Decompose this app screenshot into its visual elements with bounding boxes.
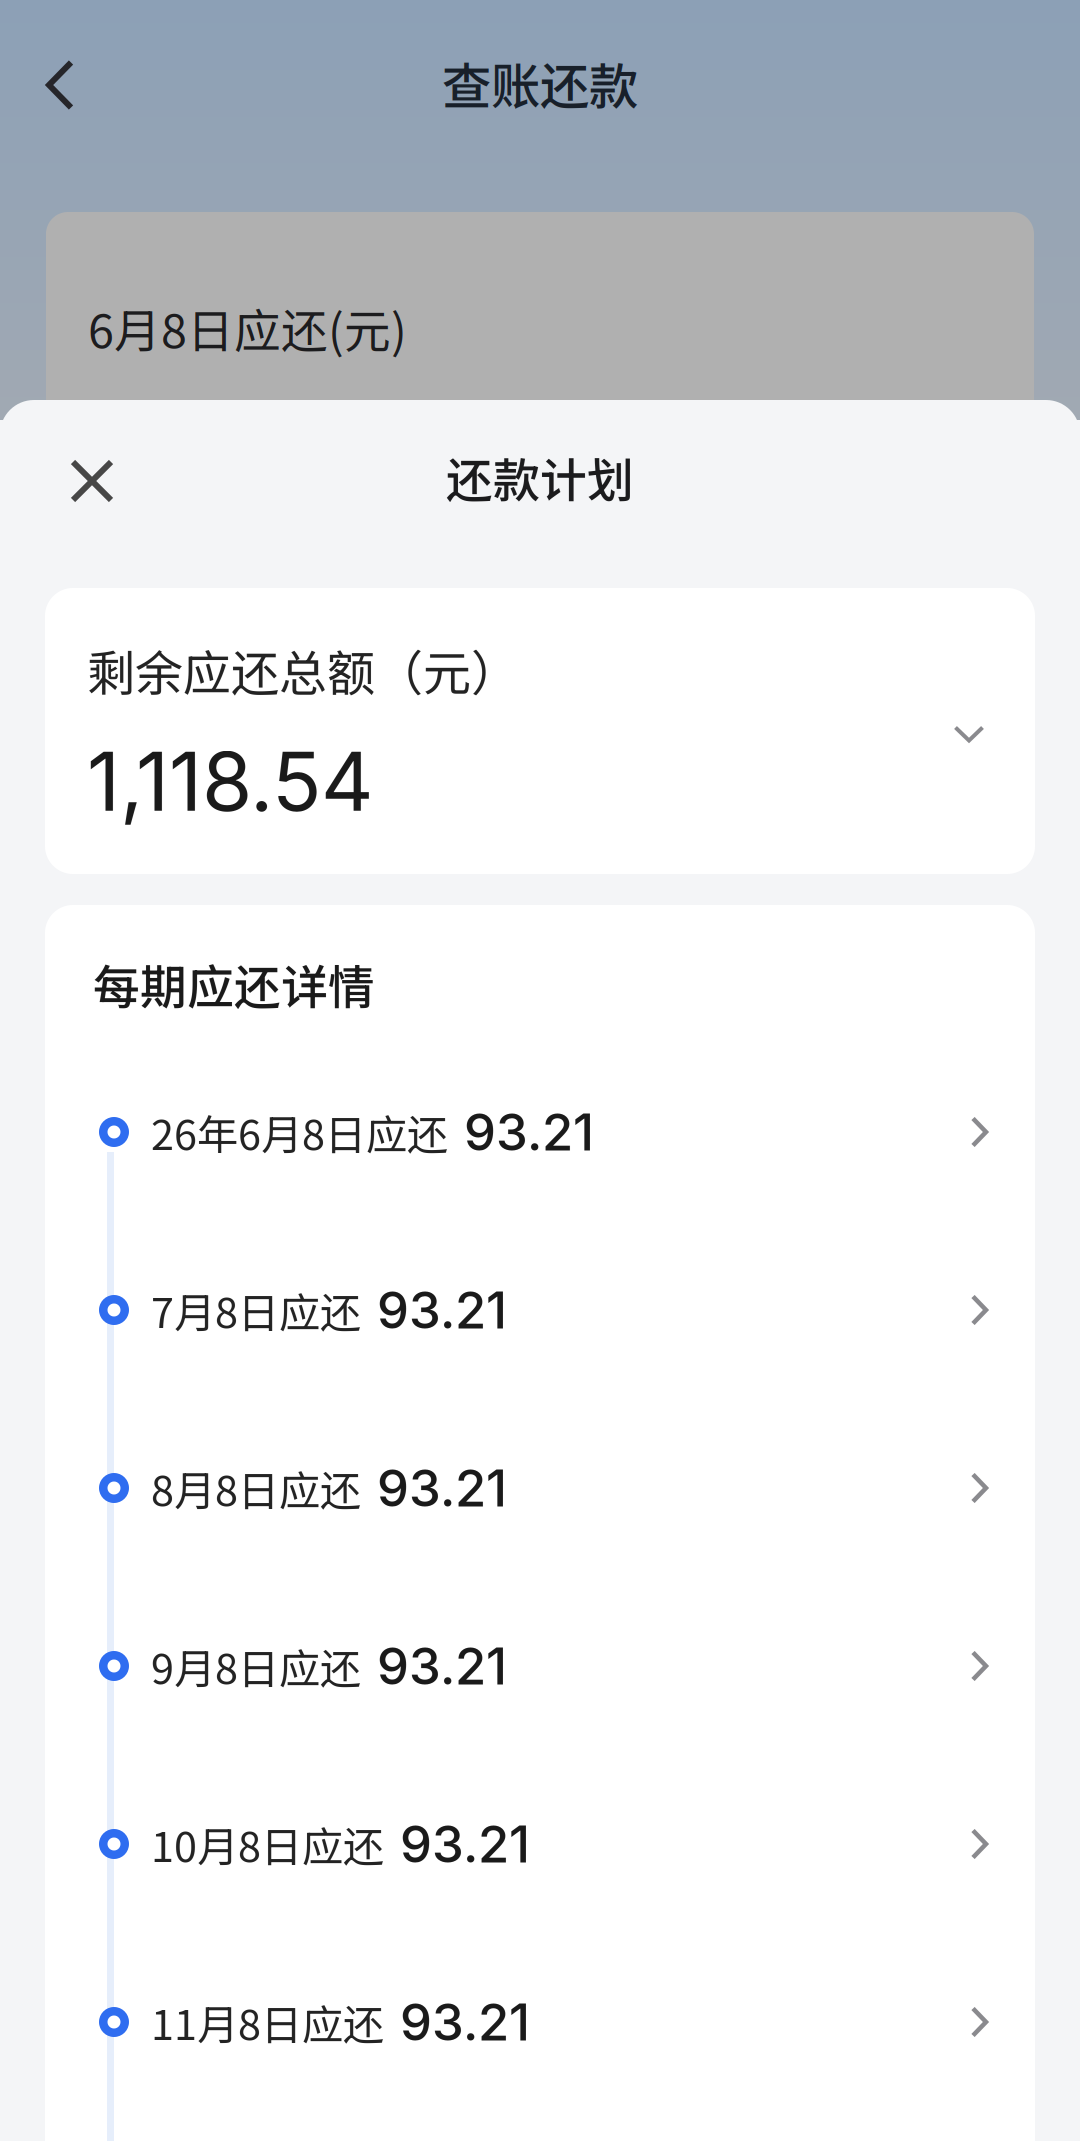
button[interactable]: 11月8日应还 — [0, 1967, 1080, 2077]
staticText: 93.21 — [377, 1457, 507, 1519]
staticText: 11月8日应还 — [151, 1992, 384, 2052]
staticText: 93.21 — [377, 1635, 507, 1697]
staticText: 93.21 — [400, 1991, 530, 2053]
button[interactable]: 26年6月8日应还 — [0, 1077, 1080, 1187]
staticText: 7月8日应还 — [151, 1280, 361, 1340]
staticText: 还款计划 — [446, 443, 634, 511]
staticText: 26年6月8日应还 — [151, 1102, 448, 1162]
staticText: 6月8日应还(元) — [88, 294, 407, 362]
staticText: 剩余应还总额（元） — [87, 635, 519, 704]
button[interactable]: 8月8日应还 — [0, 1433, 1080, 1543]
staticText: 10月8日应还 — [151, 1814, 384, 1874]
button[interactable]: 7月8日应还 — [0, 1255, 1080, 1365]
staticText: 93.21 — [464, 1101, 594, 1163]
staticText: 93.21 — [400, 1813, 530, 1875]
staticText: 1,118.54 — [87, 732, 374, 830]
staticText: 查账还款 — [442, 47, 638, 119]
staticText: 9月8日应还 — [151, 1636, 361, 1696]
button[interactable]: 9月8日应还 — [0, 1611, 1080, 1721]
button[interactable]: 返回 — [12, 37, 108, 133]
button[interactable]: 关闭 — [44, 433, 140, 529]
staticText: 8月8日应还 — [151, 1458, 361, 1518]
staticText: 每期应还详情 — [93, 950, 375, 1018]
staticText: 93.21 — [377, 1279, 507, 1341]
button[interactable]: 10月8日应还 — [0, 1789, 1080, 1899]
button[interactable]: 展开 — [921, 686, 1017, 782]
